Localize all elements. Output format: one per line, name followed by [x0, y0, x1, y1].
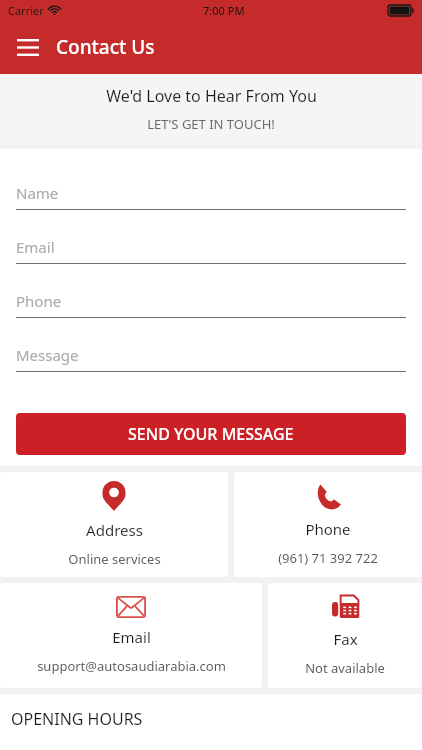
button[interactable]: Phone [234, 472, 422, 577]
staticText: SEND YOUR MESSAGE [128, 423, 294, 445]
staticText: Phone [16, 291, 62, 311]
button[interactable]: Message [16, 339, 406, 371]
button[interactable]: Fax [268, 583, 422, 688]
button[interactable]: Address [0, 472, 228, 577]
staticText: Message [16, 345, 79, 365]
staticText: support@autosaudiarabia.com [37, 657, 226, 675]
button[interactable]: Open navigation menu [8, 27, 48, 67]
staticText: Not available [305, 659, 385, 677]
staticText: Fax [333, 629, 358, 649]
staticText: Phone [305, 519, 351, 539]
staticText: LET'S GET IN TOUCH! [147, 115, 275, 133]
staticText: (961) 71 392 722 [278, 549, 378, 567]
staticText: Online services [68, 550, 161, 568]
staticText: We'd Love to Hear From You [106, 85, 317, 107]
staticText: Name [16, 183, 59, 203]
staticText: OPENING HOURS [11, 708, 143, 730]
staticText: Contact Us [56, 34, 155, 60]
staticText: Address [86, 520, 143, 540]
button[interactable]: Name [16, 177, 406, 209]
button[interactable]: SEND YOUR MESSAGE [16, 413, 406, 455]
button[interactable]: Email [16, 231, 406, 263]
staticText: 7:00 PM [203, 3, 245, 18]
staticText: Email [16, 237, 55, 257]
staticText: Carrier [8, 3, 44, 18]
button[interactable]: Email [0, 583, 262, 688]
button[interactable]: Phone [16, 285, 406, 317]
staticText: Email [112, 627, 151, 647]
